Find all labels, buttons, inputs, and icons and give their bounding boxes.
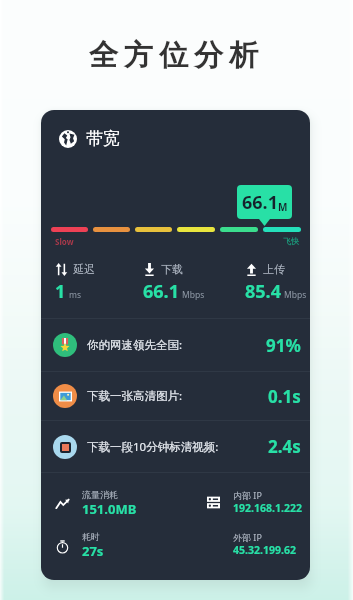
staticText: 0.1s	[268, 385, 301, 408]
button[interactable]: 你的网速领先全国:	[41, 319, 310, 371]
staticText: 外部 IP	[233, 531, 262, 543]
staticText: M	[278, 200, 288, 214]
staticText: 45.32.199.62	[233, 543, 296, 557]
staticText: 66.1	[242, 190, 278, 215]
staticText: 全方位分析	[86, 37, 261, 74]
staticText: 你的网速领先全国:	[87, 337, 183, 353]
staticText: 飞快	[283, 236, 299, 246]
staticText: 耗时	[82, 531, 100, 542]
staticText: 192.168.1.222	[233, 501, 302, 515]
staticText: 66.1	[143, 279, 179, 304]
staticText: 上传	[263, 262, 285, 276]
staticText: Mbps	[284, 289, 307, 301]
staticText: 流量消耗	[82, 489, 118, 500]
staticText: 1	[55, 279, 66, 304]
button[interactable]: 下载一段10分钟标清视频:	[41, 421, 310, 472]
staticText: 91%	[266, 334, 301, 357]
staticText: 带宽	[86, 128, 120, 149]
button[interactable]: 下载一张高清图片:	[41, 372, 310, 420]
staticText: 下载一张高清图片:	[87, 388, 183, 404]
staticText: Mbps	[182, 289, 205, 301]
staticText: 85.4	[245, 279, 281, 304]
staticText: 延迟	[73, 262, 95, 276]
staticText: 下载	[161, 262, 183, 276]
staticText: 27s	[82, 542, 104, 560]
staticText: 151.0MB	[82, 500, 137, 518]
staticText: ms	[69, 289, 82, 301]
staticText: 下载一段10分钟标清视频:	[87, 439, 219, 455]
staticText: Slow	[55, 236, 74, 247]
staticText: 2.4s	[268, 435, 301, 458]
staticText: 内部 IP	[233, 489, 262, 501]
